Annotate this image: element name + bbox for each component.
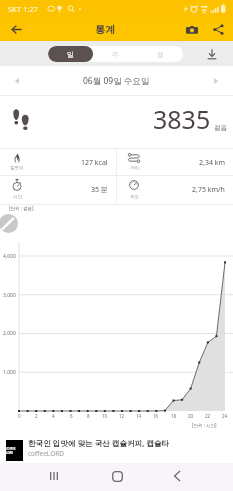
staticText: 2 [35, 413, 38, 419]
staticText: 24 [222, 413, 228, 419]
staticText: coffeeLORD [28, 449, 64, 458]
staticText: 4,000 [3, 253, 16, 260]
button[interactable]: 시간 [0, 176, 116, 204]
button[interactable]: Share [205, 18, 231, 41]
staticText: 2,34 km [199, 158, 225, 168]
staticText: 20 [188, 413, 194, 419]
staticText: 주 [112, 50, 119, 59]
staticText: 3835 [153, 102, 211, 136]
staticText: 걸음 [214, 124, 227, 132]
button[interactable]: 칼로리 [0, 149, 116, 175]
button[interactable]: Home [96, 463, 138, 491]
button[interactable]: COFFEE LORD [0, 432, 233, 463]
staticText: 14 [136, 413, 142, 419]
staticText: 0 [18, 413, 21, 419]
staticText: 6 [70, 413, 73, 419]
staticText: 거리 [130, 165, 139, 171]
staticText: 127 kcal [81, 158, 108, 168]
staticText: 10 [102, 413, 108, 419]
button[interactable]: 월 [138, 46, 183, 62]
button[interactable]: Download [195, 41, 229, 66]
button[interactable]: Previous day [9, 73, 25, 89]
staticText: COFFEE LORD [6, 447, 23, 455]
staticText: 8 [87, 413, 90, 419]
staticText: 16 [153, 413, 159, 419]
staticText: 2,75 km/h [192, 185, 225, 195]
staticText: 일 [67, 50, 74, 59]
staticText: 2,000 [3, 330, 16, 337]
staticText: 한국인 입맛에 맞는 국산 캡슐커피, 캡슐타 [28, 438, 170, 448]
staticText: 4 [52, 413, 55, 419]
button[interactable]: 거리 [117, 149, 233, 175]
staticText: 06월 09일 수요일 [83, 75, 150, 87]
staticText: [단위 : 걸음] [9, 205, 34, 211]
button[interactable]: Camera [179, 18, 205, 41]
button[interactable]: Back [0, 18, 32, 41]
staticText: 월 [157, 50, 164, 59]
button[interactable]: Back [156, 463, 198, 491]
staticText: 통계 [95, 23, 115, 36]
button[interactable]: Recent apps [33, 463, 75, 491]
button[interactable]: Reset zoom [0, 214, 18, 233]
staticText: 12 [119, 413, 125, 419]
staticText: 35 분 [91, 185, 108, 195]
staticText: 18 [171, 413, 177, 419]
staticText: 3,000 [3, 292, 16, 299]
button[interactable]: 일 [48, 46, 93, 62]
button[interactable]: Next day [208, 73, 224, 89]
staticText: 22 [205, 413, 211, 419]
staticText: 속도 [130, 194, 139, 200]
staticText: 칼로리 [10, 165, 24, 171]
button[interactable]: 주 [93, 46, 138, 62]
staticText: SKT 1:27 [8, 4, 38, 14]
staticText: 시간 [13, 194, 22, 200]
staticText: 1,000 [3, 369, 16, 376]
button[interactable]: 속도 [117, 176, 233, 204]
staticText: [단위 : 시간] [192, 422, 217, 428]
